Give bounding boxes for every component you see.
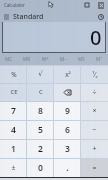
staticText: 5 (38, 124, 43, 136)
button[interactable]: MS (72, 53, 90, 65)
button[interactable]: ± (0, 158, 27, 177)
button[interactable]: x² (54, 65, 81, 83)
button[interactable]: 5 (27, 120, 54, 139)
button[interactable]: Standard (0, 11, 44, 22)
staticText: + (92, 144, 97, 154)
staticText: x² (65, 70, 71, 79)
button[interactable]: Maximize (84, 2, 90, 8)
staticText: = (92, 163, 97, 173)
button[interactable]: History (96, 12, 105, 21)
button[interactable]: 9 (54, 101, 81, 120)
button[interactable]: % (0, 65, 27, 83)
staticText: CE (10, 88, 18, 96)
staticText: 9 (65, 105, 70, 117)
staticText: 0 (90, 24, 102, 51)
staticText: − (92, 125, 97, 135)
staticText: Calculator (4, 2, 25, 8)
staticText: Standard (13, 12, 44, 22)
staticText: ¹⁄ₓ (92, 70, 98, 79)
staticText: M− (60, 56, 67, 62)
button[interactable]: √ (27, 65, 54, 83)
staticText: % (11, 70, 17, 79)
button[interactable]: 2 (27, 139, 54, 158)
staticText: 2 (38, 143, 43, 155)
staticText: M+ (42, 56, 49, 62)
staticText: 7 (11, 105, 16, 117)
staticText: 0 (38, 162, 43, 174)
button[interactable]: × (81, 101, 108, 120)
button[interactable]: CE (0, 83, 27, 101)
staticText: C (39, 88, 43, 96)
button[interactable]: . (54, 158, 81, 177)
staticText: ± (11, 163, 16, 173)
staticText: MR (23, 56, 31, 62)
button[interactable]: M− (54, 53, 72, 65)
button[interactable]: MR (18, 53, 36, 65)
staticText: 1 (11, 143, 16, 155)
staticText: 3 (65, 143, 70, 155)
staticText: MS (78, 56, 85, 62)
button[interactable]: M+ (36, 53, 54, 65)
staticText: Mˇ (96, 56, 103, 62)
staticText: . (66, 162, 69, 174)
button[interactable]: 4 (0, 120, 27, 139)
staticText: ÷ (92, 87, 97, 97)
button[interactable]: Mˇ (90, 53, 108, 65)
button[interactable]: − (81, 120, 108, 139)
button[interactable]: C (27, 83, 54, 101)
button[interactable]: 1 (0, 139, 27, 158)
button[interactable]: 7 (0, 101, 27, 120)
button[interactable]: 6 (54, 120, 81, 139)
button[interactable]: + (81, 139, 108, 158)
button[interactable]: MC (0, 53, 18, 65)
button[interactable]: Backspace (54, 83, 81, 101)
staticText: × (92, 106, 97, 116)
button[interactable]: = (81, 158, 108, 177)
button[interactable]: 8 (27, 101, 54, 120)
button[interactable]: ¹⁄ₓ (81, 65, 108, 83)
button[interactable]: ÷ (81, 83, 108, 101)
staticText: MC (5, 56, 13, 62)
staticText: 4 (11, 124, 16, 136)
staticText: 6 (65, 124, 70, 136)
staticText: 8 (38, 105, 43, 117)
button[interactable]: 3 (54, 139, 81, 158)
button[interactable]: Close (98, 2, 104, 9)
button[interactable]: 0 (27, 158, 54, 177)
staticText: √ (38, 70, 43, 78)
